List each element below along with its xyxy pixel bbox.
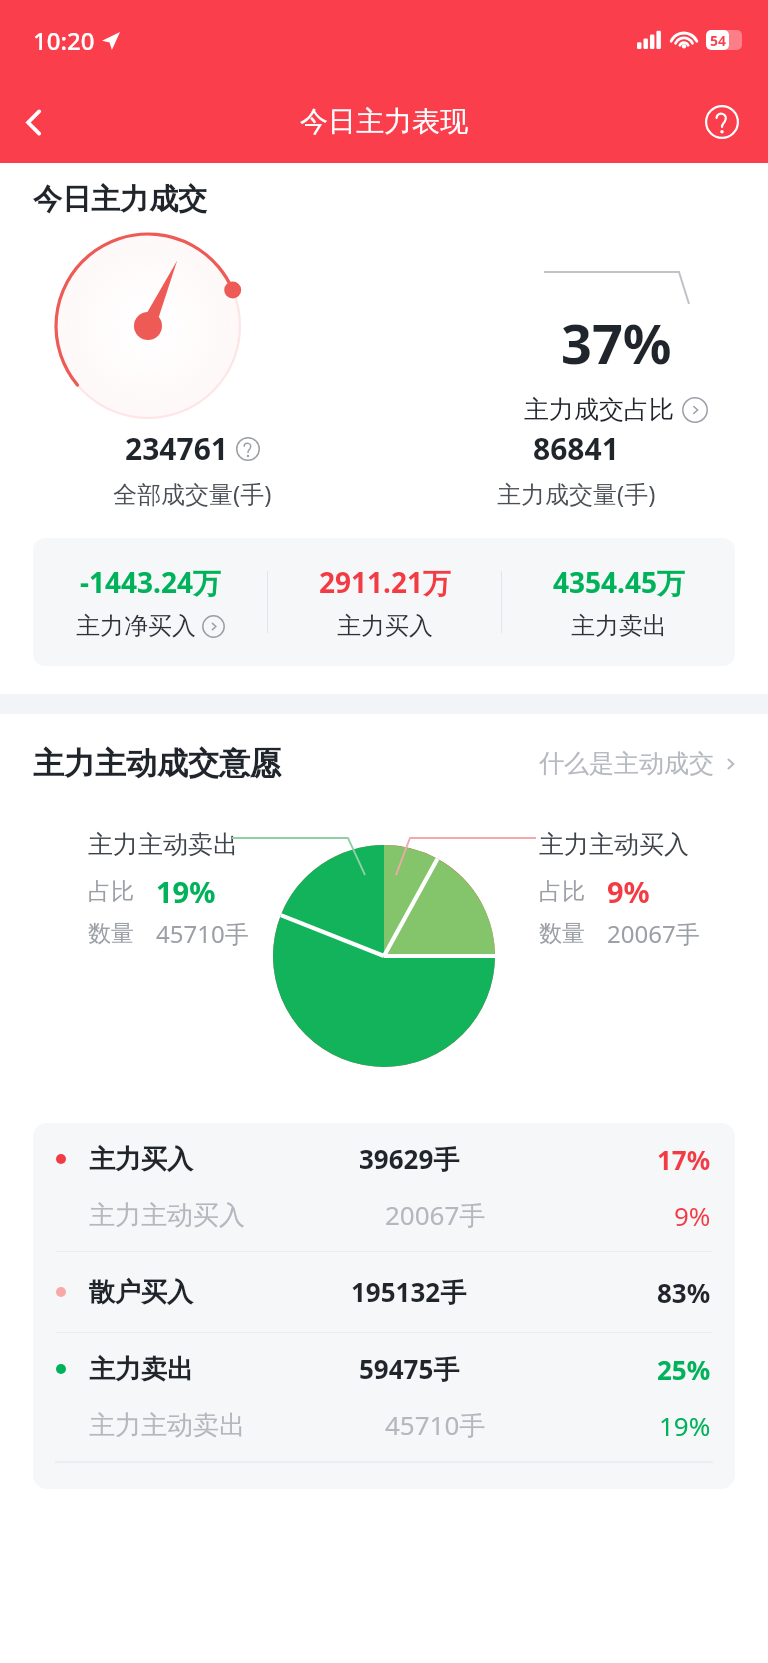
staticText: 2911.21万 — [319, 563, 451, 601]
staticText: 25% — [657, 1352, 711, 1387]
staticText: 83% — [657, 1275, 711, 1310]
button[interactable]: 主力主动买入 — [33, 1187, 735, 1243]
button[interactable]: 主力买入 — [33, 1131, 735, 1187]
staticText: 今日主力成交 — [33, 181, 207, 218]
button[interactable]: 主力成交占比 — [524, 394, 708, 425]
staticText: 主力买入 — [89, 1143, 193, 1176]
button[interactable]: 散户买入 — [33, 1264, 735, 1320]
staticText: 86841 — [533, 428, 619, 469]
staticText: 主力成交占比 — [524, 394, 674, 425]
staticText: 主力买入 — [337, 611, 433, 641]
staticText: 45710手 — [156, 917, 249, 950]
staticText: 19% — [156, 872, 216, 911]
staticText: 37% — [561, 306, 672, 380]
staticText: 10:20 — [33, 24, 95, 57]
staticText: 20067手 — [385, 1197, 486, 1233]
staticText: 主力卖出 — [89, 1353, 193, 1386]
staticText: 17% — [657, 1142, 711, 1177]
button[interactable]: -1443.24万 — [33, 563, 267, 641]
staticText: 9% — [674, 1198, 711, 1233]
button[interactable]: 4354.45万 — [502, 563, 735, 641]
staticText: 主力成交量(手) — [497, 477, 656, 510]
staticText: 占比 — [539, 877, 585, 906]
staticText: 今日主力表现 — [300, 104, 468, 139]
staticText: 主力主动卖出 — [88, 829, 238, 860]
staticText: 数量 — [539, 919, 585, 948]
staticText: 4354.45万 — [553, 563, 685, 601]
button[interactable]: 主力卖出 — [33, 1341, 735, 1397]
staticText: 39629手 — [359, 1141, 460, 1177]
staticText: 主力净买入 — [76, 611, 196, 641]
staticText: 主力主动买入 — [539, 829, 689, 860]
staticText: 主力主动成交意愿 — [33, 744, 281, 783]
staticText: 54 — [710, 31, 727, 50]
staticText: 主力卖出 — [571, 611, 667, 641]
staticText: 20067手 — [607, 917, 700, 950]
staticText: 全部成交量(手) — [113, 477, 272, 510]
button[interactable]: Help — [696, 96, 748, 148]
staticText: 主力主动买入 — [89, 1199, 245, 1232]
staticText: 59475手 — [359, 1351, 460, 1387]
staticText: -1443.24万 — [80, 563, 221, 601]
button[interactable]: Back — [0, 89, 66, 155]
staticText: 什么是主动成交 — [539, 748, 714, 779]
staticText: 195132手 — [351, 1274, 467, 1310]
button[interactable]: 主力主动卖出 — [33, 1397, 735, 1453]
button[interactable]: 2911.21万 — [268, 563, 501, 641]
staticText: 占比 — [88, 877, 134, 906]
staticText: 234761 — [125, 428, 228, 469]
staticText: 数量 — [88, 919, 134, 948]
staticText: 45710手 — [385, 1407, 486, 1443]
staticText: 9% — [607, 872, 650, 911]
button[interactable]: 什么是主动成交 — [539, 748, 742, 779]
staticText: 散户买入 — [89, 1276, 193, 1309]
staticText: 主力主动卖出 — [89, 1409, 245, 1442]
staticText: 19% — [659, 1408, 711, 1443]
